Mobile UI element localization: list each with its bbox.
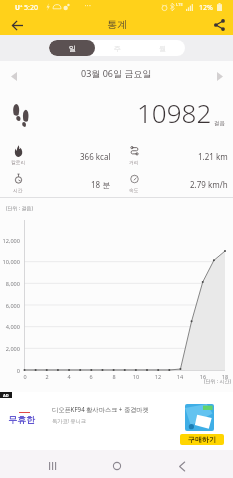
button[interactable]: Share [210, 16, 228, 34]
staticText: 주 [114, 44, 121, 53]
staticText: 5:20 [24, 3, 38, 13]
staticText: 4,000 [0, 323, 20, 331]
staticText: ⋯ [84, 2, 91, 10]
staticText: 시간 [13, 187, 23, 193]
staticText: 2.79 km/h [190, 179, 228, 190]
staticText: 걸음 [214, 120, 225, 127]
staticText: 8,000 [0, 280, 20, 288]
staticText: 10982 [137, 95, 212, 130]
staticText: 18 분 [91, 179, 111, 190]
staticText: 거리 [129, 159, 139, 165]
staticText: 10,000 [0, 258, 20, 266]
button[interactable]: 시간 [0, 169, 116, 197]
staticText: 6,000 [0, 302, 20, 310]
staticText: 2,000 [0, 345, 20, 353]
staticText: 12% [199, 3, 213, 13]
staticText: 16 [197, 373, 209, 380]
staticText: 12,000 [0, 237, 20, 245]
staticText: 8 [108, 373, 120, 380]
button[interactable]: Back [163, 452, 201, 478]
button[interactable]: 거리 [116, 141, 233, 169]
staticText: 14 [174, 373, 186, 380]
button[interactable]: Home [98, 452, 136, 478]
button[interactable]: Recent apps [33, 452, 71, 478]
staticText: 일 [69, 44, 76, 53]
button[interactable]: 일 [49, 40, 95, 56]
staticText: 속도 [129, 187, 139, 193]
staticText: U⁺ [15, 3, 23, 12]
staticText: 칼로리 [11, 159, 26, 165]
staticText: (단위 : 걸음) [6, 205, 33, 212]
button[interactable]: 속도 [116, 169, 233, 197]
staticText: AD [3, 393, 9, 398]
staticText: (단위 : 시간) [204, 378, 231, 385]
staticText: 2 [41, 373, 53, 380]
staticText: 통계 [107, 18, 127, 31]
staticText: 무휴한가 [8, 414, 40, 428]
button[interactable]: AD [0, 392, 233, 450]
staticText: 0 [0, 367, 20, 375]
staticText: 03월 06일 금요일 [81, 67, 152, 79]
staticText: 0 [19, 373, 31, 380]
button[interactable]: 구매하기 [180, 434, 224, 445]
button[interactable]: 월 [140, 40, 185, 56]
staticText: 12 [152, 373, 164, 380]
staticText: 독가코! 유니크 [52, 417, 86, 424]
button[interactable]: Next day [211, 65, 227, 81]
button[interactable]: Back [8, 16, 26, 34]
staticText: 월 [159, 44, 166, 53]
staticText: 366 kcal [80, 151, 111, 162]
button[interactable]: Previous day [6, 65, 22, 81]
staticText: 18 [219, 373, 231, 380]
staticText: 구매하기 [188, 435, 216, 444]
staticText: LTE [176, 2, 183, 7]
staticText: 디오픈KF94 황사마스크 + 중경마켓 [52, 405, 149, 413]
staticText: 1.21 km [198, 151, 228, 162]
staticText: 10 [130, 373, 142, 380]
staticText: 4 [63, 373, 75, 380]
button[interactable]: 칼로리 [0, 141, 116, 169]
staticText: 6 [85, 373, 97, 380]
